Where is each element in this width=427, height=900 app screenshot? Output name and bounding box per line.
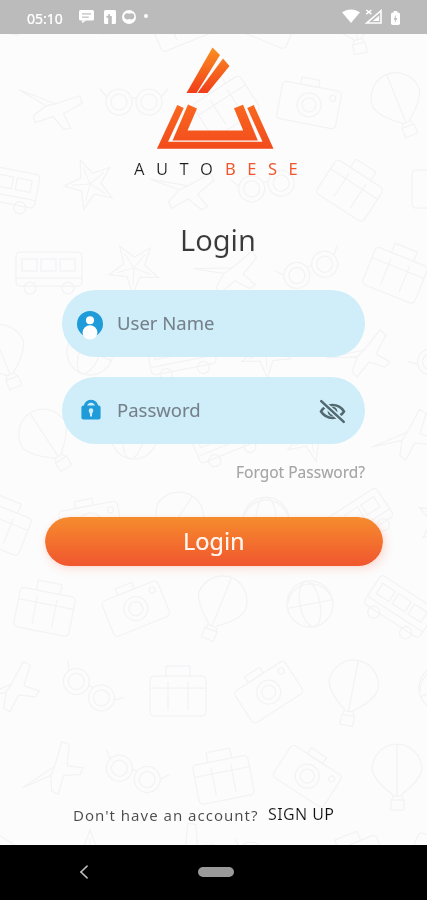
staticText: User Name	[117, 310, 215, 335]
button[interactable]: Back	[68, 856, 100, 888]
staticText: Login	[183, 525, 245, 557]
staticText: Don't have an account?	[73, 805, 259, 825]
button[interactable]: SIGN UP	[268, 803, 335, 825]
staticText: Password	[117, 397, 201, 422]
staticText: AUTO	[134, 157, 225, 179]
staticText: Login	[180, 220, 256, 259]
staticText: BESE	[225, 157, 310, 179]
button[interactable]: User Name	[62, 290, 365, 357]
staticText: Forgot Password?	[236, 461, 366, 482]
button[interactable]: Forgot Password?	[232, 458, 370, 485]
staticText: 05:10	[27, 9, 63, 28]
button[interactable]: Login	[45, 517, 383, 566]
button[interactable]: Home	[198, 867, 234, 877]
button[interactable]: Password	[62, 377, 365, 444]
button[interactable]: Show password	[317, 396, 348, 427]
staticText: SIGN UP	[268, 803, 335, 825]
